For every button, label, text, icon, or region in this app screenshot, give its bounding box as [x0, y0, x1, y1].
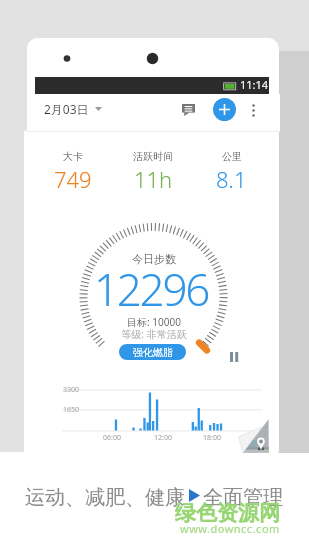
- staticText: 目标: 10000: [54, 315, 254, 333]
- staticText: 8.1: [216, 164, 247, 192]
- staticText: 运动、减肥、健康: [25, 485, 185, 510]
- staticText: 今日步数: [54, 252, 254, 270]
- staticText: 749: [54, 164, 92, 192]
- button[interactable]: 2月03日: [40, 98, 102, 120]
- staticText: 公里: [222, 150, 242, 163]
- staticText: 12:00: [138, 433, 188, 445]
- staticText: 全面管理: [203, 485, 283, 510]
- staticText: 12296: [51, 259, 251, 311]
- staticText: 等级: 非常活跃: [54, 327, 254, 345]
- staticText: www.downcc.com: [180, 521, 280, 536]
- button[interactable]: 公里: [186, 150, 276, 192]
- staticText: 11h: [134, 164, 173, 192]
- staticText: 11:14: [240, 77, 269, 92]
- staticText: 2月03日: [44, 101, 89, 117]
- button[interactable]: Add: [213, 98, 236, 121]
- staticText: 18:00: [187, 433, 237, 445]
- staticText: 06:00: [87, 433, 137, 445]
- staticText: 活跃时间: [133, 150, 173, 163]
- button[interactable]: 大卡: [28, 150, 118, 192]
- staticText: 绿色资源网: [175, 500, 280, 526]
- button[interactable]: 活跃时间: [108, 150, 198, 192]
- button[interactable]: Pause: [225, 348, 243, 366]
- button[interactable]: Messages: [176, 96, 200, 124]
- button[interactable]: 强化燃脂: [119, 344, 186, 360]
- staticText: 1650: [29, 405, 79, 417]
- staticText: 3300: [29, 385, 79, 397]
- staticText: 大卡: [63, 150, 83, 163]
- staticText: 强化燃脂: [133, 346, 173, 359]
- button[interactable]: More options: [244, 96, 263, 124]
